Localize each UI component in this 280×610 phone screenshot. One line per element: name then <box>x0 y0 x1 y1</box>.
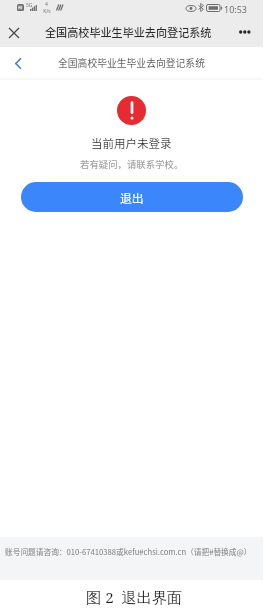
button[interactable]: Back <box>8 53 28 73</box>
staticText: 5G <box>26 2 33 9</box>
staticText: 账号问题请咨询：010-67410388或kefu#chsi.com.cn（请把… <box>5 546 252 557</box>
button[interactable]: 退出 <box>21 182 243 212</box>
staticText: 退出 <box>120 189 144 206</box>
staticText: 10:53 <box>224 3 248 15</box>
staticText: 当前用户未登录 <box>91 135 172 152</box>
staticText: K/s <box>43 8 51 15</box>
staticText: 4 <box>45 1 48 8</box>
staticText: 若有疑问，请联系学校。 <box>80 157 184 171</box>
staticText: 全国高校毕业生毕业去向登记系统 <box>45 24 212 40</box>
button[interactable]: Close <box>4 23 24 43</box>
staticText: 图 2 退出界面 <box>86 587 183 608</box>
staticText: 全国高校毕业生毕业去向登记系统 <box>58 56 205 70</box>
button[interactable]: More options <box>234 22 256 44</box>
